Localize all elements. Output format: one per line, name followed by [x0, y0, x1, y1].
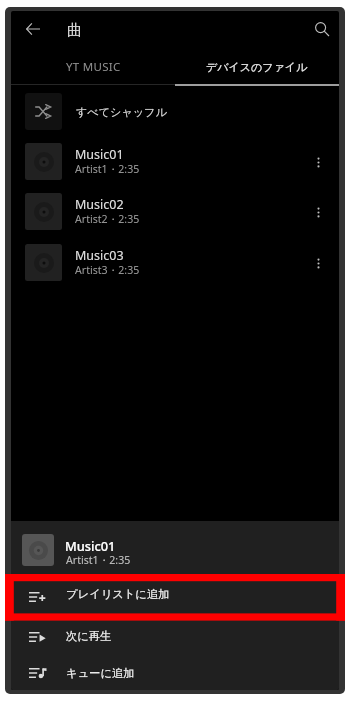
- staticText: Music03: [75, 247, 124, 264]
- button[interactable]: More options for Music02: [305, 199, 331, 225]
- staticText: 曲: [67, 21, 82, 40]
- staticText: YT MUSIC: [66, 59, 121, 75]
- button[interactable]: Back: [20, 16, 46, 42]
- button[interactable]: Music01: [11, 521, 339, 577]
- button[interactable]: More options for Music03: [305, 250, 331, 276]
- button[interactable]: YT MUSIC: [11, 47, 175, 85]
- staticText: キューに追加: [66, 666, 135, 680]
- staticText: 次に再生: [66, 629, 112, 643]
- button[interactable]: Music03: [11, 232, 339, 282]
- staticText: Artist1・2:35: [66, 553, 131, 567]
- button[interactable]: Search: [307, 14, 337, 44]
- staticText: Music01: [65, 537, 116, 554]
- button[interactable]: すべてシャッフル: [11, 93, 339, 131]
- button[interactable]: Music01: [11, 131, 339, 181]
- staticText: Music01: [75, 146, 124, 163]
- staticText: Artist2・2:35: [75, 212, 140, 226]
- staticText: プレイリストに追加: [66, 587, 170, 601]
- button[interactable]: Music02: [11, 181, 339, 231]
- staticText: すべてシャッフル: [76, 105, 167, 119]
- button[interactable]: More options for Music01: [305, 149, 331, 175]
- staticText: デバイスのファイル: [206, 60, 308, 74]
- button[interactable]: 次に再生: [11, 625, 339, 661]
- staticText: Artist1・2:35: [75, 162, 140, 176]
- staticText: Music02: [75, 196, 124, 213]
- button[interactable]: プレイリストに追加: [11, 583, 339, 619]
- button[interactable]: デバイスのファイル: [175, 47, 339, 85]
- staticText: Artist3・2:35: [75, 263, 140, 277]
- button[interactable]: キューに追加: [11, 662, 339, 690]
